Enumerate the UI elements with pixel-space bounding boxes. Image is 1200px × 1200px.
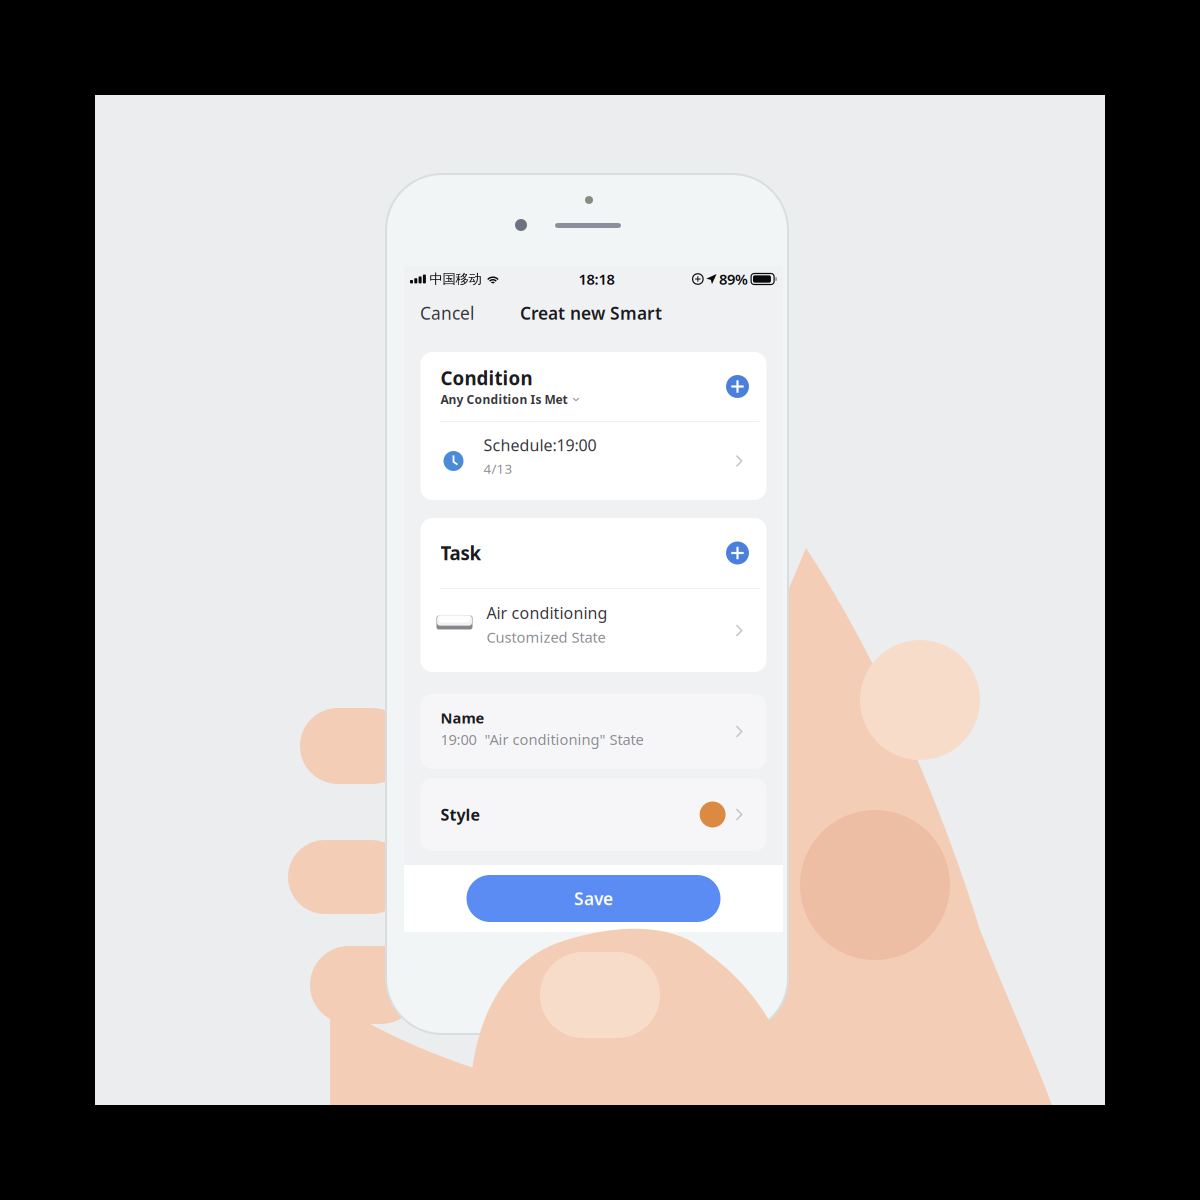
button[interactable]: Name (420, 694, 766, 769)
staticText: Task (440, 541, 481, 565)
staticText: Creat new Smart (520, 301, 662, 324)
button[interactable]: Save (466, 875, 720, 922)
staticText: 89% (719, 269, 748, 289)
staticText: Style (440, 804, 480, 825)
staticText: Schedule:19:00 (483, 434, 596, 456)
button[interactable]: Add condition (721, 370, 754, 403)
staticText: Name (440, 708, 484, 727)
staticText: Any Condition Is Met (440, 391, 567, 407)
button[interactable]: Cancel (404, 292, 490, 334)
button[interactable]: Style (420, 778, 766, 851)
staticText: Air conditioning (486, 602, 607, 623)
button[interactable]: Schedule:19:00 (420, 422, 766, 500)
button[interactable]: Add task (721, 536, 754, 569)
staticText: Cancel (420, 301, 474, 324)
button[interactable]: Air conditioning (420, 589, 766, 672)
staticText: Save (574, 887, 613, 910)
staticText: Condition (440, 366, 532, 390)
staticText: 18:18 (578, 269, 614, 289)
staticText: 19:00 "Air conditioning" State (440, 729, 643, 749)
staticText: 中国移动 (429, 271, 481, 287)
staticText: 4/13 (483, 460, 512, 477)
staticText: Customized State (486, 627, 605, 647)
